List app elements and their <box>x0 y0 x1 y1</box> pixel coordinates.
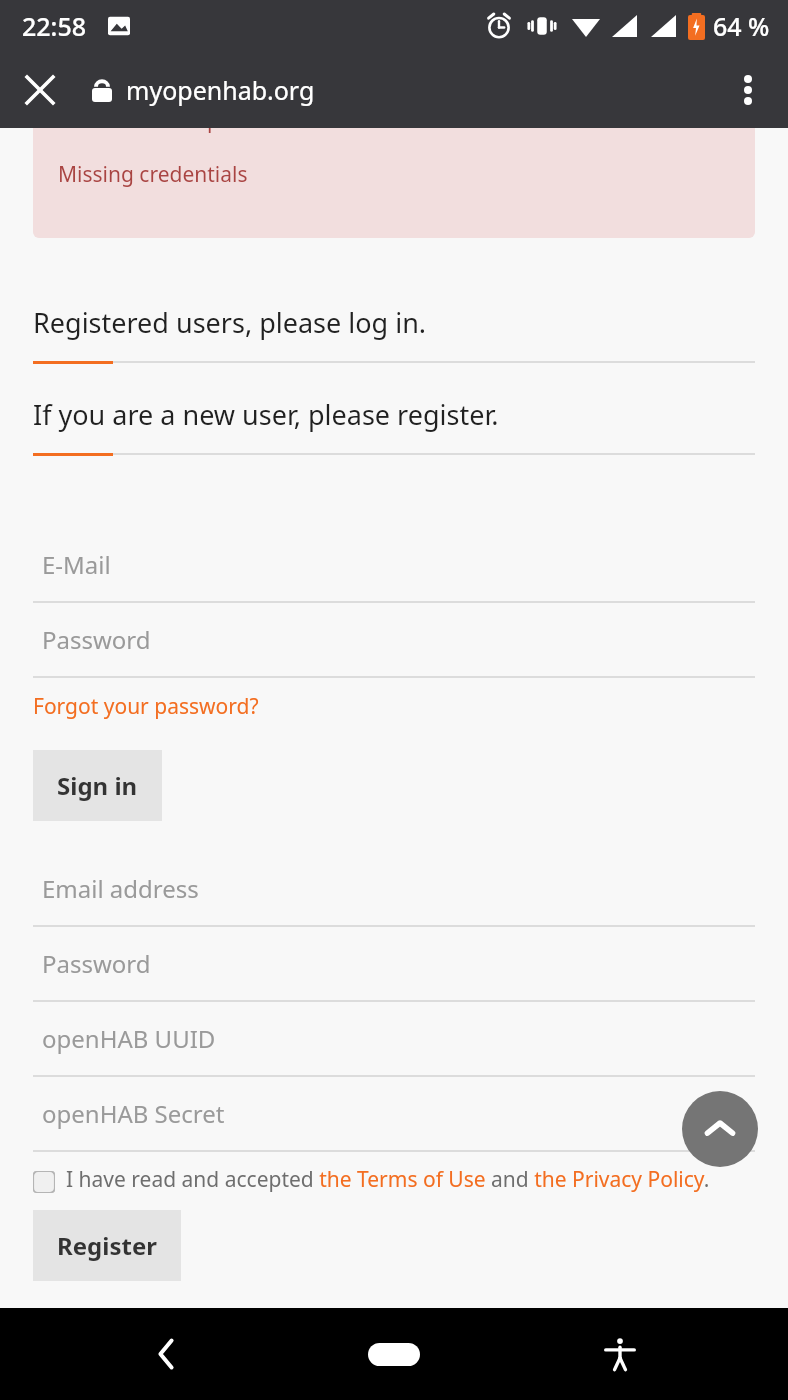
button[interactable]: Scroll to top <box>682 1091 758 1167</box>
staticText: I have read and accepted the Terms of Us… <box>66 1165 710 1194</box>
staticText: E-Mail <box>42 548 111 581</box>
button[interactable]: openHAB Secret <box>33 1077 755 1150</box>
button[interactable]: Forgot your password? <box>33 690 259 723</box>
staticText: If you are a new user, please register. <box>33 396 499 433</box>
button[interactable]: Password <box>33 927 755 1000</box>
button[interactable]: Accessibility <box>584 1318 656 1390</box>
button[interactable]: Register <box>33 1210 181 1281</box>
staticText: Password <box>42 623 151 656</box>
staticText: Forgot your password? <box>33 692 259 721</box>
staticText: 22:58 <box>22 9 87 43</box>
button[interactable]: Password <box>33 603 755 676</box>
button[interactable]: Email address <box>33 852 755 925</box>
button[interactable]: More options <box>720 62 776 118</box>
button[interactable]: E-Mail <box>33 528 755 601</box>
staticText: Missing credentials <box>58 160 248 189</box>
staticText: openHAB UUID <box>42 1022 216 1055</box>
staticText: myopenhab.org <box>126 73 315 107</box>
button[interactable]: openHAB UUID <box>33 1002 755 1075</box>
button[interactable]: Back <box>130 1318 202 1390</box>
button[interactable]: I have read and accepted the Terms of Us… <box>33 1165 755 1194</box>
staticText: Registered users, please log in. <box>33 304 427 341</box>
button[interactable]: Close <box>14 64 66 116</box>
button[interactable]: Home <box>350 1318 438 1390</box>
staticText: Sign in <box>57 769 138 802</box>
staticText: Password <box>42 947 151 980</box>
button[interactable]: Sign in <box>33 750 162 821</box>
staticText: Password is required <box>58 128 264 135</box>
staticText: openHAB Secret <box>42 1097 225 1130</box>
staticText: Register <box>57 1229 157 1262</box>
staticText: 64 % <box>713 9 770 43</box>
staticText: Email address <box>42 872 199 905</box>
